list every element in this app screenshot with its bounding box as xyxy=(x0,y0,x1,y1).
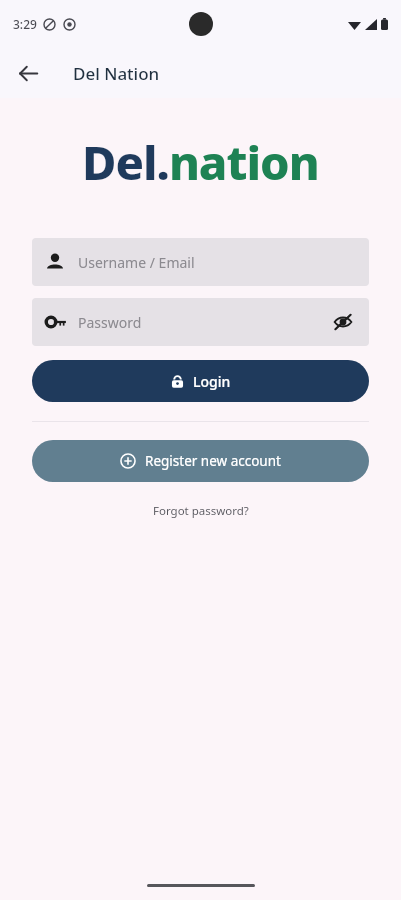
button[interactable]: Register new account xyxy=(32,440,369,482)
staticText: Username / Email xyxy=(78,253,195,272)
button[interactable]: Show password xyxy=(330,309,356,335)
staticText: Del.nation xyxy=(82,130,319,194)
staticText: Forgot password? xyxy=(153,503,249,519)
staticText: 3:29 xyxy=(13,16,37,32)
button[interactable]: Login xyxy=(32,360,369,402)
staticText: Register new account xyxy=(145,452,281,470)
staticText: Del Nation xyxy=(73,62,160,85)
button[interactable]: Forgot password? xyxy=(145,498,257,524)
staticText: Login xyxy=(193,372,231,391)
button[interactable]: Back xyxy=(8,53,49,94)
staticText: Password xyxy=(78,313,142,332)
button[interactable]: Password xyxy=(32,298,369,346)
button[interactable]: Username / Email xyxy=(32,238,369,286)
